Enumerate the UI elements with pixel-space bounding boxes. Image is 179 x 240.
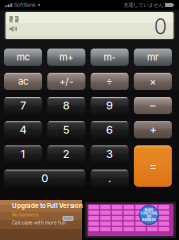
staticText: ÷ [106,75,113,87]
button[interactable]: 2 [47,145,85,163]
staticText: 5 [63,123,70,136]
staticText: 2 [63,147,70,161]
staticText: m- [104,51,116,63]
staticText: 7 [20,99,26,112]
button[interactable]: +/- [47,73,85,90]
button[interactable]: + [134,121,172,138]
staticText: Upgrade to Full Version [12,202,83,209]
staticText: NO [147,215,151,218]
staticText: +/- [59,76,73,87]
staticText: 3 [106,147,113,161]
staticText: × [149,75,156,87]
staticText: + [149,123,156,136]
button[interactable]: ac [4,73,42,90]
button[interactable]: ÷ [91,73,129,90]
button[interactable]: – [134,97,172,114]
button[interactable]: 3 [91,145,129,163]
button[interactable]: 0 [4,169,85,187]
staticText: 6 [106,123,113,136]
staticText: mc [16,51,29,63]
staticText: Calculate with more fun [12,220,66,226]
staticText: FUNCTIONS [140,212,157,215]
button[interactable]: Upgrade to Full Version [0,200,179,240]
staticText: SoftBank [14,2,36,8]
button[interactable]: m- [91,48,129,66]
staticText: 0 [154,14,167,39]
staticText: 1 [20,147,25,161]
button[interactable]: mr [134,48,172,66]
button[interactable]: mc [4,48,42,66]
staticText: 4 [19,123,26,136]
button[interactable]: 8 [47,97,85,114]
staticText: 8 [63,99,70,112]
staticText: more [64,217,72,220]
button[interactable]: 4 [4,121,42,138]
staticText: 充電していません [123,2,163,8]
staticText: m+ [59,51,73,63]
staticText: . [108,171,111,185]
button[interactable]: 5 [47,121,85,138]
staticText: No banners [12,212,39,218]
button[interactable]: m+ [47,48,85,66]
button[interactable]: 7 [4,97,42,114]
button[interactable]: × [134,73,172,90]
button[interactable]: 1 [4,145,42,163]
button[interactable]: . [91,169,129,187]
staticText: ▾ [38,2,41,8]
staticText: BANNERS [142,218,156,222]
staticText: mr [147,51,159,63]
button[interactable]: = [134,145,172,187]
staticText: 9 [106,99,113,112]
staticText: 0 [41,171,48,185]
staticText: MORE [144,208,153,212]
staticText: – [150,99,156,112]
button[interactable]: 9 [91,97,129,114]
staticText: = [149,159,156,173]
staticText: ac [18,76,28,87]
button[interactable]: 6 [91,121,129,138]
